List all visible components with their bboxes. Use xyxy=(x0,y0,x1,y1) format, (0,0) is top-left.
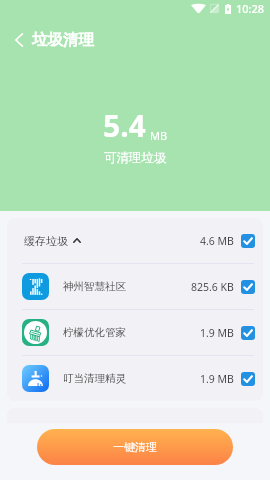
staticText: 4.6 MB xyxy=(200,234,234,248)
staticText: 柠檬优化管家 xyxy=(63,326,126,339)
staticText: 5.4 xyxy=(103,105,146,146)
button[interactable]: 叮当清理精灵 xyxy=(22,356,255,401)
staticText: 可清理垃圾 xyxy=(104,150,167,166)
button[interactable]: Back xyxy=(0,18,30,62)
button[interactable]: Selected xyxy=(241,280,255,294)
staticText: 叮当清理精灵 xyxy=(63,372,126,385)
button[interactable]: 缓存垃圾 xyxy=(24,218,255,263)
button[interactable]: 柠檬优化管家 xyxy=(22,310,255,355)
staticText: MB xyxy=(150,128,168,143)
staticText: 1.9 MB xyxy=(200,326,234,340)
staticText: 1.9 MB xyxy=(200,372,234,386)
button[interactable]: Selected xyxy=(241,372,255,386)
staticText: 10:28 xyxy=(236,1,265,16)
button[interactable]: 一键清理 xyxy=(37,429,233,465)
staticText: 825.6 KB xyxy=(191,280,234,294)
staticText: 缓存垃圾 xyxy=(24,234,68,248)
button[interactable]: Selected xyxy=(241,234,255,248)
staticText: 神州智慧社区 xyxy=(63,280,126,293)
button[interactable]: Selected xyxy=(241,326,255,340)
button[interactable]: 神州智慧社区 xyxy=(22,264,255,309)
staticText: 一键清理 xyxy=(113,440,157,454)
staticText: 垃圾清理 xyxy=(32,30,94,50)
